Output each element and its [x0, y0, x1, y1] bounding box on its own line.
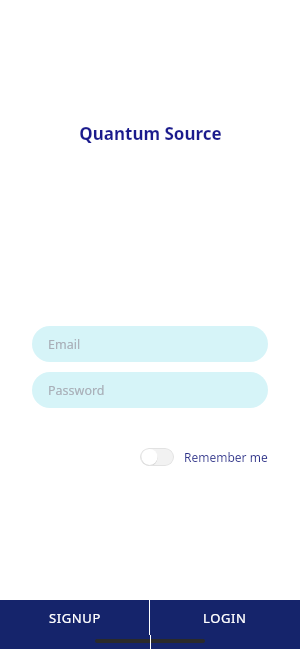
button[interactable]: Email — [32, 326, 268, 362]
staticText: LOGIN — [203, 609, 247, 627]
staticText: Remember me — [184, 449, 268, 465]
button[interactable]: LOGIN — [150, 600, 300, 635]
staticText: Email — [48, 336, 81, 353]
staticText: Quantum Source — [79, 122, 222, 145]
button[interactable]: SIGNUP — [0, 600, 149, 635]
staticText: Password — [48, 382, 105, 399]
other: Remember me toggle — [140, 448, 174, 466]
button[interactable]: Remember me toggle — [140, 446, 268, 468]
button[interactable]: Password — [32, 372, 268, 408]
staticText: SIGNUP — [49, 609, 101, 627]
